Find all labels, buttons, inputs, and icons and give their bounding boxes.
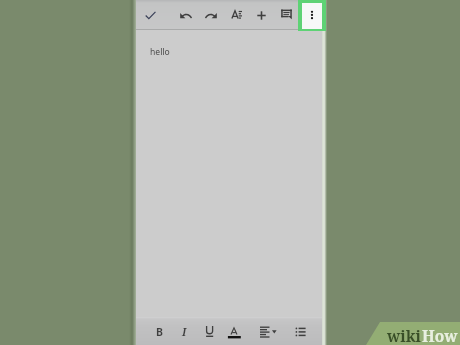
button[interactable]: List xyxy=(294,326,307,338)
button[interactable]: Text formatting xyxy=(231,10,242,20)
button[interactable]: Underline xyxy=(205,325,216,338)
button[interactable]: Insert xyxy=(254,8,269,23)
staticText: wiki xyxy=(387,325,422,345)
button[interactable]: Text color xyxy=(227,327,242,340)
staticText: B xyxy=(156,325,163,339)
button[interactable]: Undo xyxy=(179,9,193,23)
staticText: How xyxy=(422,325,458,345)
button[interactable]: Done xyxy=(143,8,158,23)
button[interactable]: Comment xyxy=(281,9,293,20)
button[interactable]: Italic xyxy=(175,323,193,341)
button[interactable]: More xyxy=(309,9,315,20)
staticText: I xyxy=(182,325,187,339)
staticText: hello xyxy=(150,46,170,58)
button[interactable]: Bold xyxy=(150,323,168,341)
button[interactable]: Redo xyxy=(204,9,218,23)
button[interactable]: More options xyxy=(302,3,322,29)
button[interactable]: Alignment xyxy=(259,325,278,338)
